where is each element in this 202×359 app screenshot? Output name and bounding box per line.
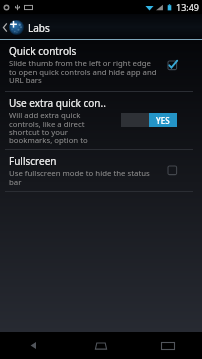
button[interactable]: Use extra quick con.. (0, 92, 202, 149)
button[interactable]: Fullscreen, off (165, 160, 187, 180)
button[interactable]: Home (67, 332, 134, 359)
staticText: Use fullscreen mode to hide the status b… (9, 168, 158, 187)
staticText: Use extra quick con.. (9, 96, 106, 110)
button[interactable]: Recent apps (134, 332, 201, 359)
button[interactable]: Navigate up to Browser settings (0, 14, 202, 40)
button[interactable]: Back (0, 332, 67, 359)
staticText: 13:49 (176, 1, 200, 13)
staticText: Labs (28, 21, 50, 35)
button[interactable]: Quick controls, on (165, 55, 187, 75)
button[interactable]: Fullscreen (0, 150, 202, 191)
staticText: Will add extra quick controls, like a di… (9, 110, 99, 145)
button[interactable]: Quick controls (0, 40, 202, 91)
staticText: YES (156, 115, 170, 126)
staticText: Quick controls (9, 44, 77, 58)
staticText: Fullscreen (9, 154, 57, 168)
staticText: Slide thumb from the left or right edge … (9, 58, 158, 85)
button[interactable]: Toggle, YES (121, 113, 177, 127)
